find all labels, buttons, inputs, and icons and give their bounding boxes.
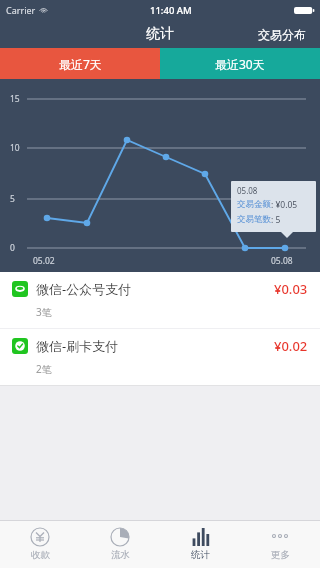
staticText: 收款 [31, 549, 50, 561]
staticText: 05.08 [237, 185, 258, 196]
staticText: ¥0.02 [274, 337, 308, 355]
button[interactable]: 统计 [160, 521, 240, 568]
staticText: 15 [10, 93, 20, 105]
staticText: : ¥0.05 [271, 199, 298, 211]
staticText: 05.08 [271, 255, 293, 267]
staticText: 统计 [191, 549, 210, 561]
button[interactable]: 流水 [80, 521, 160, 568]
staticText: 05.02 [33, 255, 55, 267]
button[interactable]: 最近7天 [0, 48, 160, 79]
staticText: 5 [10, 193, 15, 205]
staticText: 交易笔数 [237, 214, 271, 225]
staticText: 2笔 [36, 362, 52, 376]
staticText: 微信-刷卡支付 [36, 337, 119, 355]
staticText: Carrier [6, 4, 36, 16]
staticText: : 5 [271, 214, 281, 226]
staticText: 流水 [111, 549, 130, 561]
staticText: ¥0.03 [274, 280, 308, 298]
staticText: 3笔 [36, 305, 52, 319]
staticText: 微信-公众号支付 [36, 280, 132, 298]
staticText: 最近7天 [59, 56, 102, 72]
staticText: 11:40 AM [150, 4, 192, 17]
button[interactable]: 微信-公众号支付 [0, 272, 320, 328]
button[interactable]: 微信-刷卡支付 [0, 329, 320, 385]
staticText: 0 [10, 242, 15, 254]
staticText: 最近30天 [215, 56, 265, 72]
staticText: 更多 [271, 549, 290, 561]
staticText: 统计 [146, 25, 174, 43]
staticText: 交易分布 [258, 27, 306, 42]
button[interactable]: 交易分布 [244, 20, 320, 48]
staticText: 10 [10, 142, 20, 154]
staticText: 交易金额 [237, 199, 271, 210]
button[interactable]: 更多 [240, 521, 320, 568]
button[interactable]: 最近30天 [160, 48, 320, 79]
button[interactable]: 收款 [0, 521, 80, 568]
